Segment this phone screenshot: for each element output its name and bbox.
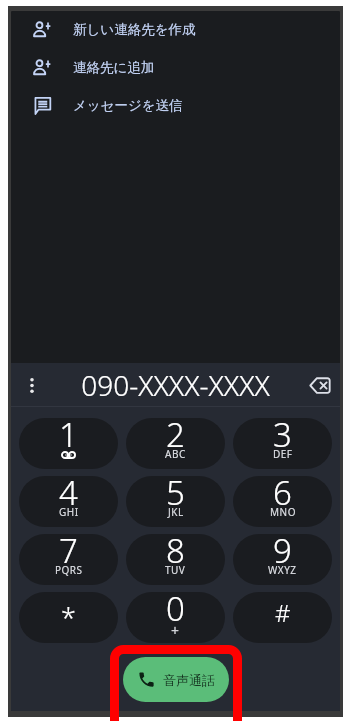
- button[interactable]: Backspace: [304, 369, 336, 401]
- button[interactable]: #: [233, 592, 332, 643]
- staticText: 1: [59, 418, 78, 457]
- staticText: 5: [166, 476, 185, 515]
- button[interactable]: メッセージを送信: [11, 86, 340, 124]
- staticText: 7: [59, 534, 78, 573]
- staticText: MNO: [270, 505, 296, 519]
- button[interactable]: 7: [19, 534, 118, 585]
- button[interactable]: More options: [16, 369, 48, 401]
- staticText: #: [275, 596, 291, 629]
- button[interactable]: 5: [126, 476, 225, 527]
- staticText: 6: [273, 476, 292, 515]
- staticText: 音声通話: [163, 672, 215, 688]
- staticText: ABC: [165, 447, 186, 461]
- staticText: *: [61, 599, 76, 636]
- staticText: 連絡先に追加: [73, 59, 155, 76]
- staticText: PQRS: [55, 563, 83, 577]
- button[interactable]: 0: [126, 592, 225, 643]
- button[interactable]: *: [19, 592, 118, 643]
- button[interactable]: 3: [233, 418, 332, 469]
- button[interactable]: 1: [19, 418, 118, 469]
- button[interactable]: 音声通話: [123, 657, 229, 702]
- staticText: 4: [59, 476, 78, 515]
- staticText: DEF: [273, 447, 293, 461]
- button[interactable]: 8: [126, 534, 225, 585]
- staticText: +: [171, 621, 180, 640]
- button[interactable]: 6: [233, 476, 332, 527]
- button[interactable]: 連絡先に追加: [11, 48, 340, 86]
- button[interactable]: 4: [19, 476, 118, 527]
- button[interactable]: 新しい連絡先を作成: [11, 11, 340, 48]
- staticText: 090-XXXX-XXXX: [81, 366, 270, 404]
- staticText: 8: [166, 534, 185, 573]
- staticText: 新しい連絡先を作成: [73, 21, 196, 38]
- staticText: JKL: [168, 505, 184, 519]
- staticText: 0: [166, 592, 185, 631]
- staticText: 9: [273, 534, 292, 573]
- staticText: 3: [273, 418, 292, 457]
- staticText: TUV: [165, 563, 186, 577]
- staticText: GHI: [59, 505, 79, 519]
- staticText: 2: [166, 418, 185, 457]
- staticText: WXYZ: [268, 563, 297, 577]
- staticText: メッセージを送信: [73, 97, 183, 114]
- button[interactable]: 2: [126, 418, 225, 469]
- button[interactable]: 9: [233, 534, 332, 585]
